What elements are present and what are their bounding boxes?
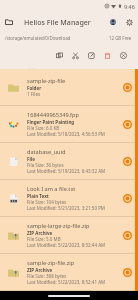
staticText: File Size: 388 bytes bbox=[27, 273, 67, 279]
button[interactable]: Select item bbox=[121, 81, 134, 94]
button[interactable]: Cut bbox=[67, 47, 83, 63]
button[interactable]: Delete bbox=[99, 47, 115, 63]
staticText: Finger Paint Painting bbox=[27, 119, 75, 125]
button[interactable]: sample-large-zip-file.zip bbox=[0, 217, 138, 253]
button[interactable]: Open folder bbox=[1, 14, 16, 29]
button[interactable]: sample-zip-file.zip bbox=[0, 254, 138, 290]
staticText: sample-zip-file bbox=[27, 77, 66, 85]
staticText: database_uuid bbox=[27, 148, 66, 156]
staticText: 1 Files bbox=[27, 91, 41, 97]
button[interactable]: Account bbox=[106, 15, 120, 29]
staticText: Helios File Manager bbox=[24, 17, 91, 27]
staticText: Look I am a file.txt bbox=[27, 185, 76, 193]
button[interactable]: Select item bbox=[121, 118, 134, 131]
staticText: sample-large-zip-file.zip bbox=[27, 222, 90, 230]
staticText: Last Modified: 5/19/2023, 6:43:32 AM bbox=[27, 168, 106, 174]
button[interactable]: Select item bbox=[121, 155, 134, 168]
button[interactable]: Select item bbox=[121, 229, 134, 242]
button[interactable]: database_uuid bbox=[0, 143, 138, 179]
button[interactable]: Rename bbox=[83, 47, 99, 63]
staticText: ZIP Archive bbox=[27, 230, 53, 236]
staticText: ZIP Archive bbox=[27, 267, 53, 273]
staticText: Last Modified: 5/18/2023, 4:56:53 PM bbox=[27, 131, 105, 137]
staticText: File Size: 36 bytes bbox=[27, 162, 64, 168]
button[interactable]: Select item bbox=[121, 192, 134, 205]
staticText: 9:46 bbox=[124, 3, 135, 10]
staticText: /storage/emulated/0/Download bbox=[5, 35, 71, 41]
staticText: Last Modified: 5/22/2023, 8:52:44 AM bbox=[27, 242, 106, 248]
button[interactable]: Look I am a file.txt bbox=[0, 180, 138, 216]
staticText: Last Modified: 5/22/2023, 8:52:41 AM bbox=[27, 279, 106, 285]
button[interactable]: sample-zip-file bbox=[0, 69, 138, 105]
staticText: File bbox=[27, 156, 35, 162]
button[interactable]: Settings bbox=[122, 15, 136, 29]
button[interactable]: Close selection bbox=[115, 47, 131, 63]
staticText: File Size: 5.0 MB bbox=[27, 236, 61, 242]
staticText: 1684449965349.fpp bbox=[27, 111, 79, 119]
button[interactable]: 1684449965349.fpp bbox=[0, 106, 138, 142]
staticText: 12 GB Free bbox=[109, 35, 132, 41]
staticText: File Size: 6.0 KB bbox=[27, 125, 60, 131]
staticText: 1 Files bbox=[28, 66, 41, 69]
staticText: File Size: 104 bytes bbox=[27, 199, 67, 205]
staticText: Last Modified: 5/21/2023, 3:21:50 PM bbox=[27, 205, 105, 211]
staticText: Folder bbox=[27, 85, 42, 91]
staticText: Plain Text bbox=[27, 193, 49, 199]
button[interactable]: Select item bbox=[121, 266, 134, 279]
button[interactable]: Copy bbox=[51, 47, 67, 63]
staticText: sample-zip-file.zip bbox=[27, 259, 75, 267]
